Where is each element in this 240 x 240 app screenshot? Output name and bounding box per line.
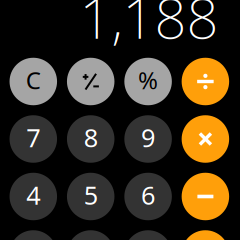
staticText: % (138, 64, 158, 96)
staticText: C (26, 64, 41, 96)
button[interactable]: Multiply (182, 115, 229, 163)
staticText: 4 (26, 178, 40, 212)
button[interactable]: C (9, 58, 57, 105)
staticText: 6 (141, 178, 155, 212)
button[interactable]: 5 (67, 173, 114, 220)
button[interactable]: 6 (124, 173, 172, 220)
button[interactable]: Minus (182, 173, 229, 220)
button[interactable]: 8 (67, 115, 114, 163)
button[interactable]: Plus or minus (67, 58, 114, 105)
button[interactable]: 7 (9, 115, 57, 163)
staticText: 5 (84, 178, 98, 212)
button[interactable]: 3 (124, 230, 172, 240)
button[interactable]: 1 (9, 230, 57, 240)
staticText: 9 (141, 121, 155, 154)
button[interactable]: 4 (9, 173, 57, 220)
button[interactable]: Plus (182, 230, 229, 240)
staticText: 7 (26, 121, 40, 154)
button[interactable]: 2 (67, 230, 114, 240)
button[interactable]: Divide (182, 58, 229, 105)
button[interactable]: % (124, 58, 172, 105)
staticText: 1,188 (79, 0, 218, 54)
staticText: 8 (84, 121, 98, 154)
button[interactable]: 9 (124, 115, 172, 163)
